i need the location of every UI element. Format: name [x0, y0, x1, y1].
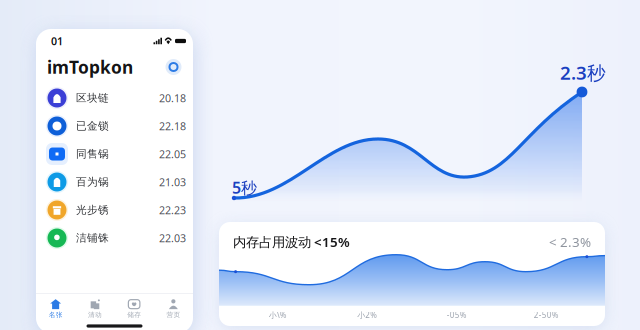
staticText: 同售锅 — [76, 147, 109, 160]
button[interactable]: 百为锅 — [36, 168, 193, 196]
staticText: 内存占用波动 <15% — [233, 233, 350, 251]
staticText: -05% — [447, 310, 467, 320]
button[interactable]: 洁铺铢 — [36, 224, 193, 252]
staticText: 已金锁 — [76, 119, 109, 132]
staticText: 21.03 — [159, 175, 186, 189]
staticText: 5秒 — [232, 177, 257, 198]
button[interactable]: 清动 — [75, 293, 114, 320]
button[interactable]: Scan — [165, 58, 182, 75]
staticText: 01 — [51, 34, 63, 48]
staticText: 百为锅 — [76, 175, 109, 188]
button[interactable]: 同售锅 — [36, 140, 193, 168]
staticText: 22.05 — [159, 147, 186, 161]
button[interactable]: 名张 — [36, 293, 75, 320]
staticText: 2.3秒 — [560, 60, 606, 85]
staticText: 名张 — [49, 311, 63, 319]
staticText: 清动 — [88, 311, 102, 319]
staticText: 小2% — [357, 310, 377, 320]
staticText: < 2.3% — [549, 233, 591, 251]
button[interactable]: 营页 — [154, 293, 193, 320]
staticText: 储存 — [127, 311, 141, 319]
button[interactable]: 已金锁 — [36, 112, 193, 140]
staticText: 22.23 — [159, 203, 186, 217]
staticText: 洁铺铢 — [76, 231, 109, 244]
staticText: 区块链 — [76, 91, 109, 104]
staticText: 22.03 — [159, 231, 186, 245]
button[interactable]: 储存 — [114, 293, 154, 320]
button[interactable]: 区块链 — [36, 84, 193, 112]
staticText: 光步锈 — [76, 203, 109, 216]
staticText: 22.18 — [159, 119, 186, 133]
staticText: imTopkon — [47, 55, 133, 78]
staticText: 20.18 — [159, 91, 186, 105]
button[interactable]: 光步锈 — [36, 196, 193, 224]
staticText: 小\% — [269, 310, 287, 320]
staticText: 2-50% — [534, 310, 559, 320]
staticText: 营页 — [166, 311, 180, 319]
